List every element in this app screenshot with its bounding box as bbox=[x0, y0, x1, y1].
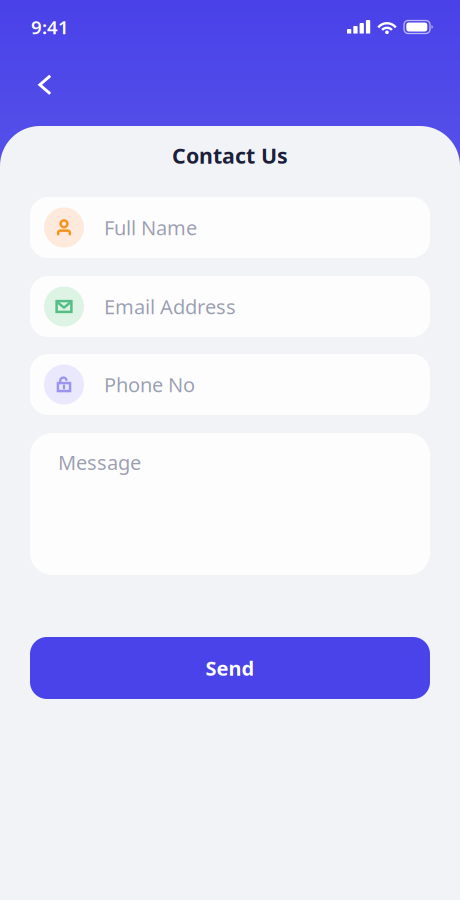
staticText: Phone No bbox=[104, 371, 195, 398]
staticText: 9:41 bbox=[31, 15, 69, 39]
button[interactable]: Back bbox=[24, 62, 69, 111]
button[interactable]: Email Address bbox=[30, 276, 430, 337]
button[interactable]: Message bbox=[30, 433, 430, 575]
button[interactable]: Send bbox=[30, 637, 430, 699]
button[interactable]: Full Name bbox=[30, 197, 430, 258]
button[interactable]: Phone No bbox=[30, 354, 430, 415]
staticText: Full Name bbox=[104, 214, 197, 241]
staticText: Contact Us bbox=[172, 141, 288, 170]
staticText: Message bbox=[58, 449, 141, 476]
staticText: Email Address bbox=[104, 293, 236, 320]
staticText: Send bbox=[205, 655, 254, 681]
